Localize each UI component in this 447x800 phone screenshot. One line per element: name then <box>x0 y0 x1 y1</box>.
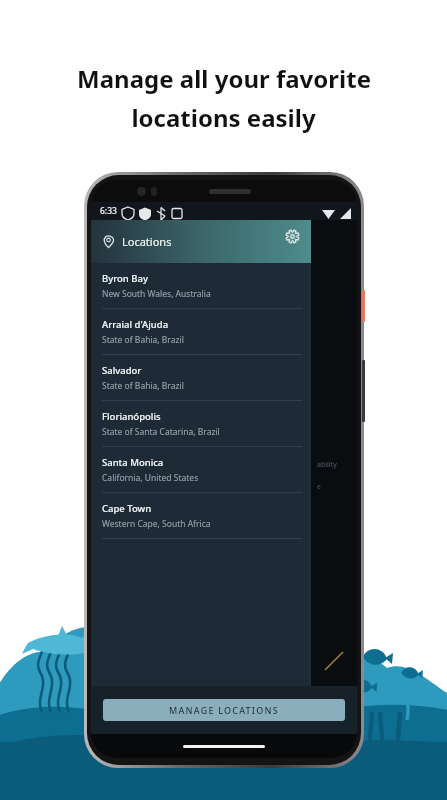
button[interactable]: Santa Monica <box>91 447 311 493</box>
staticText: Arraial d'Ajuda <box>102 318 169 331</box>
staticText: State of Bahia, Brazil <box>102 334 184 346</box>
staticText: Byron Bay <box>102 272 148 285</box>
button[interactable]: Cape Town <box>91 493 311 539</box>
staticText: Cape Town <box>102 502 152 515</box>
staticText: State of Santa Catarina, Brazil <box>102 426 220 438</box>
staticText: Florianópolis <box>102 410 161 423</box>
button[interactable]: MANAGE LOCATIONS <box>103 699 345 721</box>
staticText: Salvador <box>102 364 142 377</box>
button[interactable]: Settings <box>282 226 302 246</box>
staticText: Locations <box>122 234 172 249</box>
staticText: Manage all your favorite <box>77 62 371 95</box>
staticText: Western Cape, South Africa <box>102 518 211 530</box>
button[interactable]: Florianópolis <box>91 401 311 447</box>
button[interactable]: Salvador <box>91 355 311 401</box>
staticText: MANAGE LOCATIONS <box>169 704 279 716</box>
staticText: locations easily <box>131 101 316 134</box>
staticText: 6:33 <box>100 205 117 217</box>
staticText: ability <box>317 460 337 470</box>
staticText: e <box>317 482 321 492</box>
staticText: State of Bahia, Brazil <box>102 380 184 392</box>
button[interactable]: Arraial d'Ajuda <box>91 309 311 355</box>
staticText: California, United States <box>102 472 199 484</box>
button[interactable]: Byron Bay <box>91 263 311 309</box>
staticText: Santa Monica <box>102 456 164 469</box>
staticText: New South Wales, Australia <box>102 288 211 300</box>
